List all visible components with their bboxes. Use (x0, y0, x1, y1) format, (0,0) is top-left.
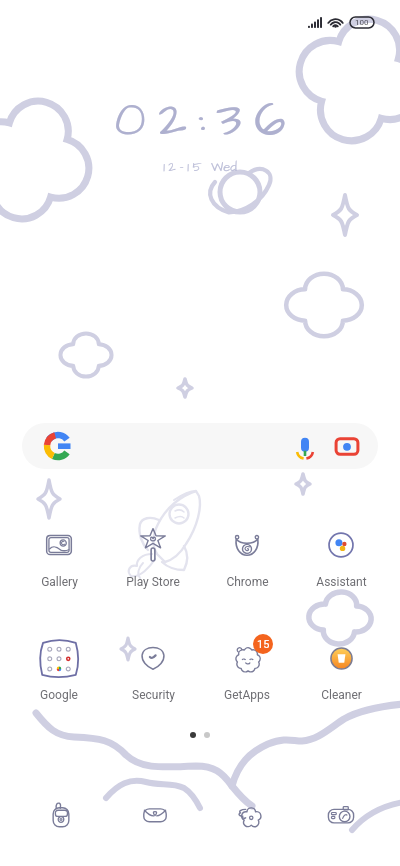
staticText: Wed (211, 158, 237, 176)
staticText: 0 (114, 86, 146, 155)
staticText: 100 (355, 18, 369, 27)
staticText: Assistant (316, 575, 367, 589)
button[interactable]: Assistant (294, 524, 388, 589)
staticText: Chrome (226, 575, 269, 589)
staticText: 3 (216, 86, 242, 155)
staticText: 15 (257, 638, 270, 651)
staticText: Gallery (41, 575, 78, 589)
staticText: Security (132, 688, 175, 702)
staticText: GetApps (224, 688, 270, 702)
button[interactable]: Voice search (22, 423, 378, 469)
button[interactable]: Google Lens (334, 433, 360, 459)
button[interactable]: Messages (108, 790, 202, 840)
staticText: 2 (168, 158, 176, 176)
button[interactable]: Gallery (12, 524, 106, 589)
staticText: Play Store (126, 575, 180, 589)
staticText: 5 (192, 158, 202, 176)
button[interactable]: Camera (296, 790, 386, 840)
button[interactable]: Voice search (292, 433, 318, 459)
button[interactable]: Play Store (106, 524, 200, 589)
staticText: - (179, 158, 184, 176)
staticText: Google (40, 688, 78, 702)
button[interactable]: Cleaner (294, 637, 388, 702)
staticText: 2 (158, 86, 187, 155)
staticText: Cleaner (321, 688, 362, 702)
button[interactable]: Security (106, 637, 200, 702)
button[interactable]: Chrome (200, 524, 294, 589)
staticText: 6 (254, 86, 286, 155)
button[interactable]: Phone (14, 790, 108, 840)
button[interactable]: Google (12, 637, 106, 702)
staticText: 1 (187, 158, 189, 176)
button[interactable]: 15 (200, 637, 294, 702)
staticText: 1 (163, 158, 165, 176)
staticText: : (197, 86, 206, 155)
button[interactable]: Settings (202, 790, 296, 840)
